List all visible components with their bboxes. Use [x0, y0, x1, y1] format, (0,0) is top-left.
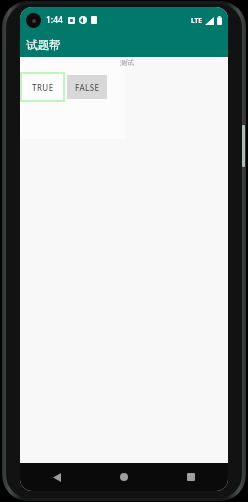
button[interactable]: Back	[42, 463, 72, 491]
staticText: 试题帮	[26, 38, 61, 52]
button[interactable]: TRUE	[20, 72, 65, 102]
other: Power button	[242, 125, 245, 167]
staticText: LTE	[191, 16, 202, 25]
staticText: FALSE	[75, 82, 100, 93]
button[interactable]: FALSE	[67, 75, 107, 99]
button[interactable]: Recent apps	[176, 463, 206, 491]
staticText: TRUE	[32, 82, 54, 93]
button[interactable]: Home	[109, 463, 139, 491]
staticText: 测试	[120, 58, 134, 67]
staticText: 1:44	[46, 14, 63, 26]
